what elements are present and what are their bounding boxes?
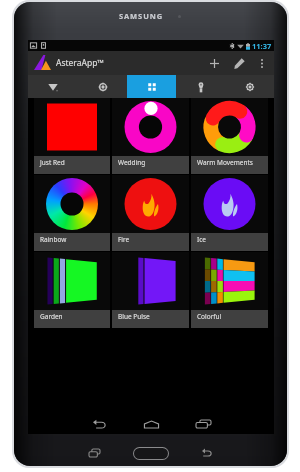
- button[interactable]: Presets: [127, 75, 176, 98]
- button[interactable]: Recent apps: [188, 414, 218, 434]
- button[interactable]: Edit: [229, 53, 249, 73]
- staticText: Just Red: [40, 158, 65, 167]
- staticText: Blue Pulse: [118, 312, 150, 321]
- button[interactable]: Back: [84, 414, 114, 434]
- button[interactable]: Recent apps: [82, 444, 106, 462]
- button[interactable]: Warm Movements: [191, 98, 268, 174]
- staticText: Colorful: [197, 312, 222, 321]
- button[interactable]: Blue Pulse: [112, 252, 189, 328]
- button[interactable]: Settings: [225, 75, 274, 98]
- button[interactable]: Home: [136, 414, 166, 434]
- button[interactable]: Rainbow: [34, 175, 110, 251]
- button[interactable]: Home: [134, 448, 168, 459]
- staticText: Ice: [197, 235, 206, 244]
- button[interactable]: Just Red: [34, 98, 110, 174]
- button[interactable]: Fire: [112, 175, 189, 251]
- button[interactable]: Back: [195, 444, 219, 462]
- button[interactable]: Colorful: [191, 252, 268, 328]
- staticText: AsteraApp™: [56, 57, 104, 69]
- button[interactable]: Aim: [78, 75, 127, 98]
- button[interactable]: Garden: [34, 252, 110, 328]
- button[interactable]: Wireless: [28, 75, 78, 98]
- staticText: Rainbow: [40, 235, 67, 244]
- staticText: Warm Movements: [197, 158, 253, 167]
- staticText: Garden: [40, 312, 63, 321]
- button[interactable]: Wedding: [112, 98, 189, 174]
- staticText: Fire: [118, 235, 130, 244]
- button[interactable]: Add preset: [204, 53, 224, 73]
- staticText: Wedding: [118, 158, 146, 167]
- button[interactable]: Ice: [191, 175, 268, 251]
- button[interactable]: More options: [255, 56, 269, 70]
- button[interactable]: Lamps: [176, 75, 225, 98]
- staticText: 11:37: [252, 41, 272, 51]
- staticText: SAMSUNG: [119, 11, 164, 21]
